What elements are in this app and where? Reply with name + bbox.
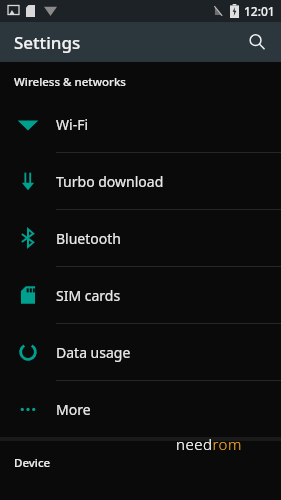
button[interactable]: SIM cards <box>0 267 281 323</box>
staticText: Wireless & networks <box>14 74 126 90</box>
staticText: Device <box>14 455 51 471</box>
staticText: Settings <box>14 31 81 54</box>
button[interactable]: Turbo download <box>0 153 281 209</box>
staticText: needrom <box>176 434 242 454</box>
button[interactable]: More <box>0 381 281 437</box>
staticText: SIM cards <box>56 286 121 305</box>
button[interactable]: Data usage <box>0 324 281 380</box>
button[interactable]: Search <box>241 26 273 58</box>
staticText: Bluetooth <box>56 229 121 248</box>
staticText: Data usage <box>56 343 131 362</box>
staticText: Turbo download <box>56 172 164 191</box>
button[interactable]: Bluetooth <box>0 210 281 266</box>
staticText: More <box>56 400 91 419</box>
staticText: Wi-Fi <box>56 115 89 134</box>
staticText: 12:01 <box>244 3 275 19</box>
button[interactable]: Wi-Fi <box>0 96 281 152</box>
